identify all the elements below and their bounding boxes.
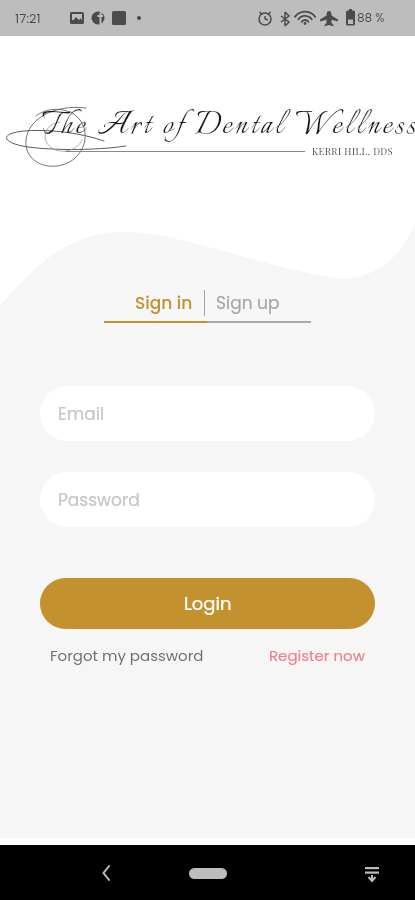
- staticText: Forgot my password: [50, 645, 204, 666]
- staticText: Sign up: [216, 291, 280, 315]
- staticText: Register now: [269, 645, 365, 666]
- staticText: KERRI HILL, DDS: [312, 145, 394, 158]
- button[interactable]: Login: [40, 578, 375, 629]
- button[interactable]: Password: [40, 472, 375, 527]
- button[interactable]: Home: [178, 858, 238, 888]
- button[interactable]: Sign up: [205, 289, 289, 317]
- staticText: Password: [58, 488, 140, 512]
- button[interactable]: Email: [40, 386, 375, 441]
- button[interactable]: Register now: [269, 642, 365, 669]
- staticText: Sign in: [135, 291, 193, 315]
- staticText: Login: [184, 591, 232, 616]
- button[interactable]: Back: [90, 856, 124, 890]
- staticText: The Art of Dental Wellness: [42, 103, 415, 151]
- staticText: Email: [58, 402, 105, 426]
- button[interactable]: Forgot my password: [50, 642, 204, 669]
- button[interactable]: Sign in: [126, 289, 204, 317]
- staticText: 17:21: [15, 9, 41, 27]
- button[interactable]: Hide keyboard: [355, 856, 389, 890]
- staticText: 88 %: [357, 9, 385, 26]
